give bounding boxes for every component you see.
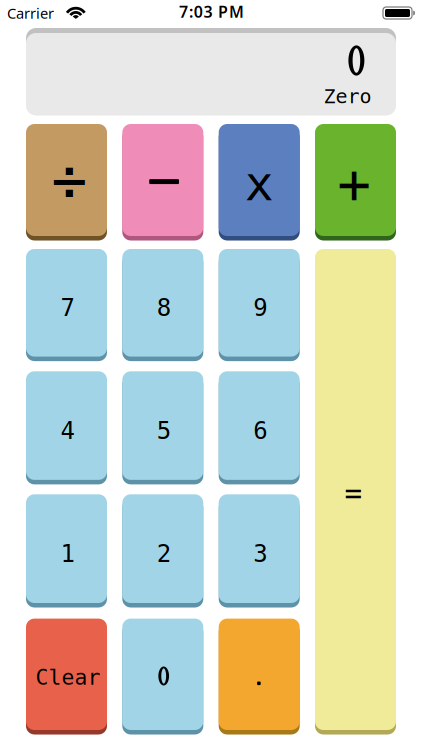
staticText: Zero xyxy=(323,85,371,108)
staticText: x xyxy=(245,156,274,211)
staticText: 3 xyxy=(253,540,267,567)
staticText: + xyxy=(337,152,371,216)
staticText: 7:03 PM xyxy=(179,1,244,22)
button[interactable]: 8 xyxy=(122,249,203,357)
button[interactable]: + xyxy=(315,124,396,236)
button[interactable]: 2 xyxy=(122,494,203,603)
staticText: Carrier xyxy=(7,3,54,23)
button[interactable]: 6 xyxy=(219,371,300,480)
staticText: 1 xyxy=(60,540,74,567)
staticText: 2 xyxy=(157,540,171,567)
button[interactable]: ÷ xyxy=(26,124,107,236)
staticText: 8 xyxy=(157,294,171,321)
staticText: = xyxy=(345,476,363,510)
button[interactable]: 3 xyxy=(219,494,300,603)
button[interactable]: 4 xyxy=(26,371,107,480)
button[interactable]: 1 xyxy=(26,494,107,603)
button[interactable]: 7 xyxy=(26,249,107,357)
staticText: 7 xyxy=(60,294,74,321)
staticText: 6 xyxy=(253,417,267,444)
button[interactable]: Clear xyxy=(26,619,107,730)
button[interactable]: Decimal point xyxy=(219,619,300,730)
staticText: 9 xyxy=(253,294,267,321)
staticText: Clear xyxy=(35,665,100,689)
button[interactable]: 5 xyxy=(122,371,203,480)
staticText: ÷ xyxy=(51,146,87,214)
button[interactable]: Subtract xyxy=(122,124,203,236)
staticText: 4 xyxy=(60,417,74,444)
button[interactable]: x xyxy=(219,124,300,236)
button[interactable]: 0 xyxy=(122,619,203,730)
button[interactable]: = xyxy=(315,249,396,730)
staticText: 5 xyxy=(157,417,171,444)
button[interactable]: 9 xyxy=(219,249,300,357)
